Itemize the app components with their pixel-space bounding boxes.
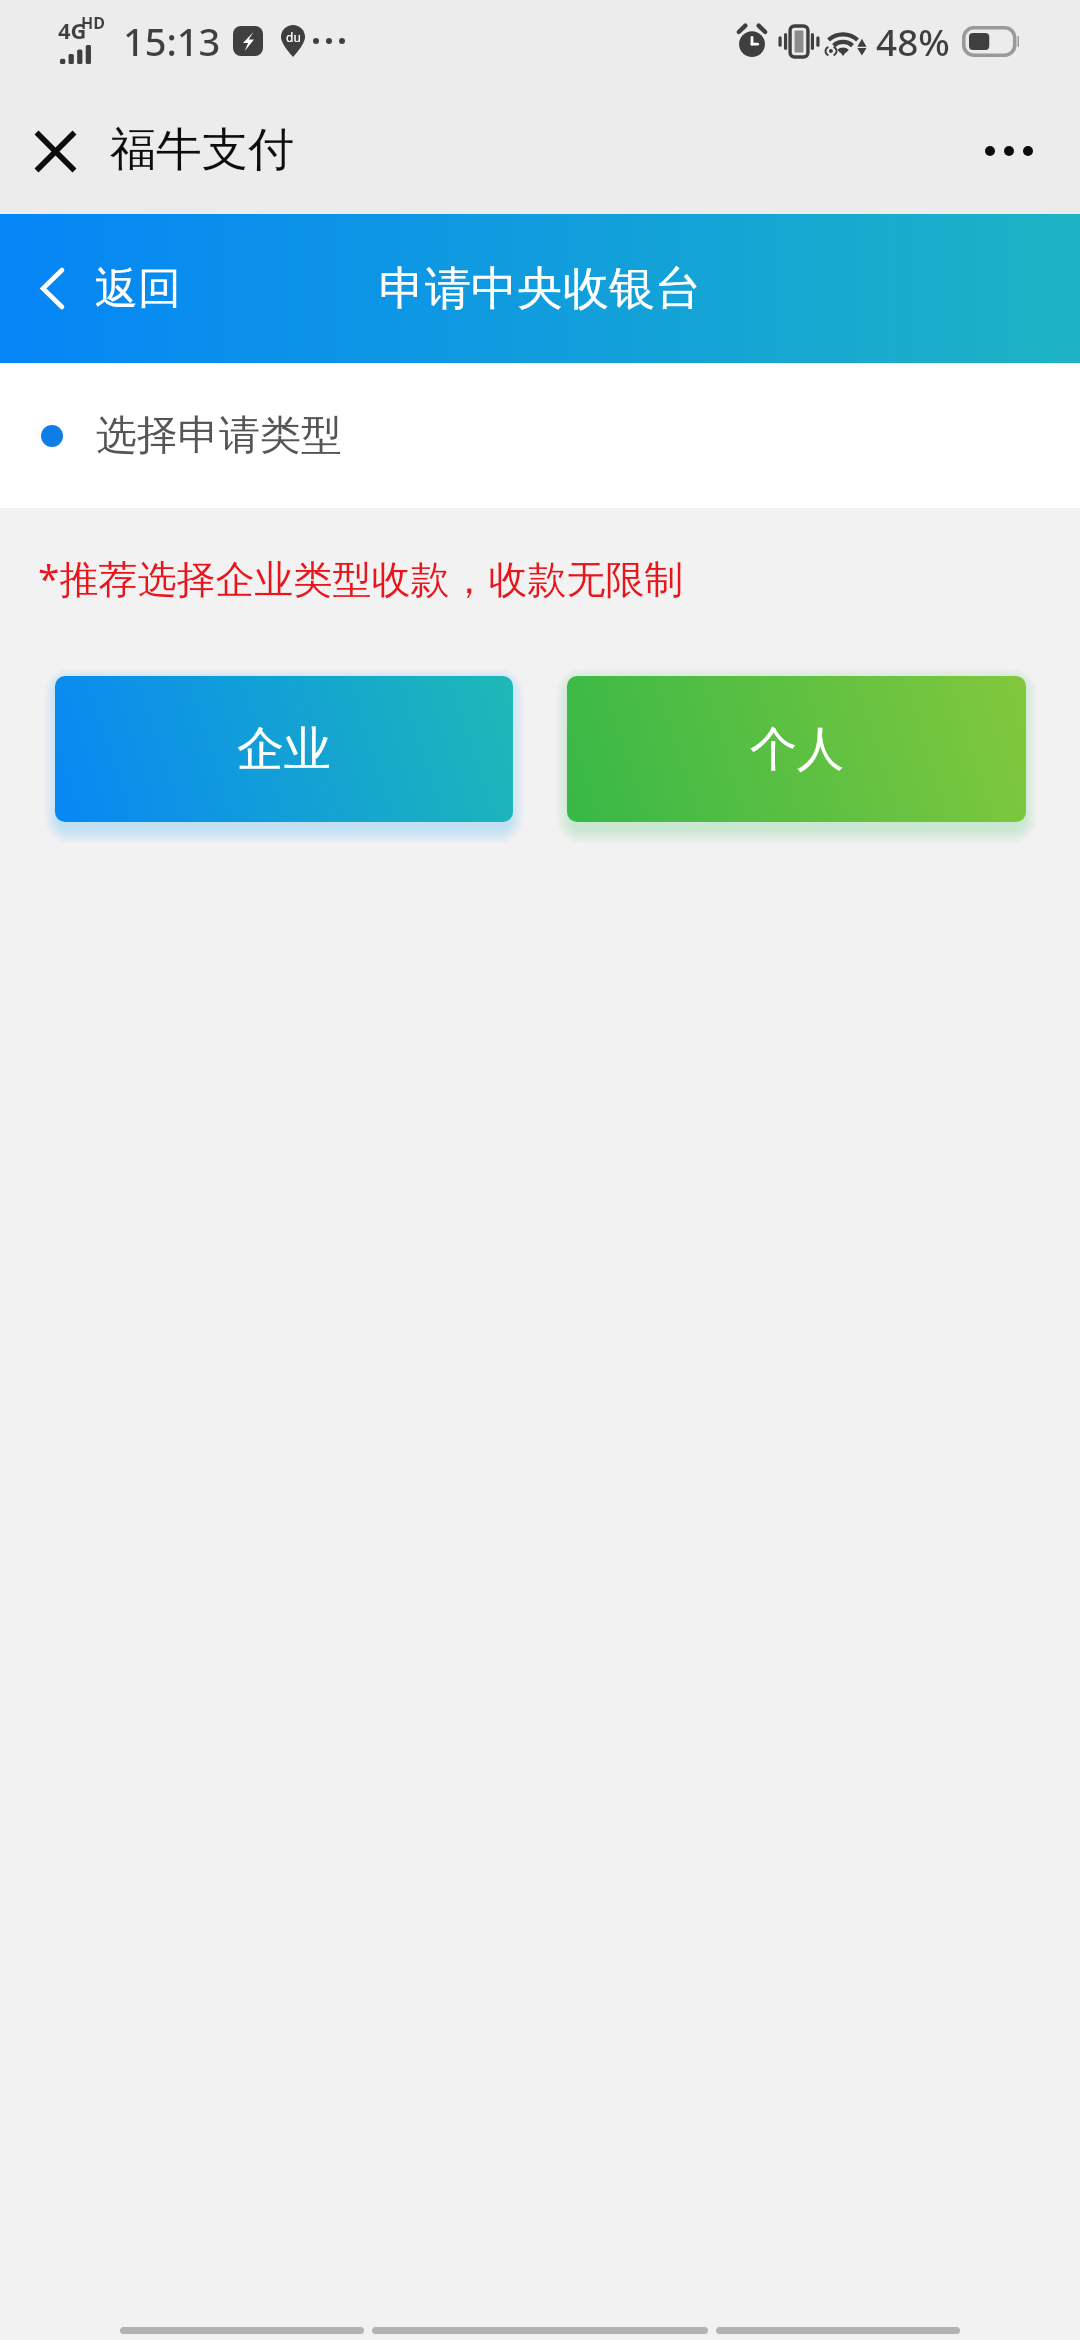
button[interactable]: Home xyxy=(372,2327,708,2334)
staticText: 15:13 xyxy=(123,15,221,67)
staticText: 返回 xyxy=(95,262,181,316)
staticText: du xyxy=(286,29,301,45)
staticText: 企业 xyxy=(237,720,331,779)
staticText: HD xyxy=(81,12,105,34)
staticText: 福牛支付 xyxy=(110,121,294,179)
staticText: 申请中央收银台 xyxy=(379,260,701,318)
button[interactable]: 企业 xyxy=(55,676,513,822)
staticText: 个人 xyxy=(750,720,844,779)
button[interactable]: 个人 xyxy=(567,676,1026,822)
button[interactable]: Close xyxy=(0,88,110,214)
button[interactable]: More options xyxy=(938,88,1080,214)
button[interactable]: 返回 xyxy=(26,214,195,363)
staticText: 48% xyxy=(876,16,950,66)
button[interactable]: Back xyxy=(120,2327,364,2334)
staticText: 4G xyxy=(58,15,87,45)
staticText: 选择申请类型 xyxy=(96,410,342,462)
staticText: *推荐选择企业类型收款，收款无限制 xyxy=(38,551,684,604)
button[interactable]: Recents xyxy=(716,2327,960,2334)
